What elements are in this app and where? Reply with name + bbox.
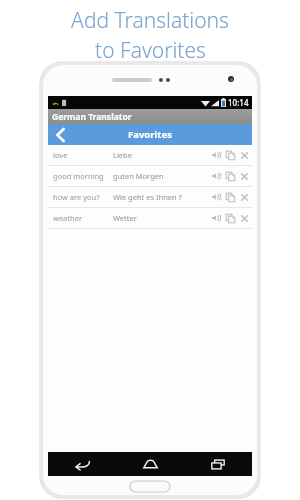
button[interactable]: Delete xyxy=(237,208,252,228)
staticText: weather xyxy=(53,213,113,223)
staticText: Liebe xyxy=(113,150,185,160)
button[interactable]: Recent apps xyxy=(184,452,252,476)
staticText: 10:14 xyxy=(228,97,249,108)
staticText: Wie geht es Ihnen ? xyxy=(113,192,185,202)
staticText: Wetter xyxy=(113,213,185,223)
staticText: how are you? xyxy=(53,192,113,202)
button[interactable]: how are you? xyxy=(48,187,252,208)
button[interactable]: Delete xyxy=(237,145,252,165)
button[interactable]: Back xyxy=(48,452,116,476)
staticText: Favorites xyxy=(128,128,172,141)
button[interactable]: Copy xyxy=(223,187,237,207)
staticText: guten Morgen xyxy=(113,171,185,181)
button[interactable]: love xyxy=(48,145,252,166)
staticText: German Translator xyxy=(52,111,132,123)
staticText: to Favorites xyxy=(95,36,206,65)
staticText: Add Translations xyxy=(71,6,229,35)
button[interactable]: weather xyxy=(48,208,252,229)
staticText: love xyxy=(53,150,113,160)
button[interactable]: Copy xyxy=(223,208,237,228)
button[interactable]: Home xyxy=(116,452,184,476)
staticText: good morning xyxy=(53,171,113,181)
button[interactable]: Speak xyxy=(209,145,223,165)
button[interactable]: Delete xyxy=(237,187,252,207)
button[interactable]: good morning xyxy=(48,166,252,187)
button[interactable]: Copy xyxy=(223,166,237,186)
button[interactable]: Speak xyxy=(209,187,223,207)
button[interactable]: Speak xyxy=(209,208,223,228)
button[interactable]: Copy xyxy=(223,145,237,165)
button[interactable]: Speak xyxy=(209,166,223,186)
button[interactable]: Back xyxy=(48,124,72,145)
button[interactable]: Delete xyxy=(237,166,252,186)
